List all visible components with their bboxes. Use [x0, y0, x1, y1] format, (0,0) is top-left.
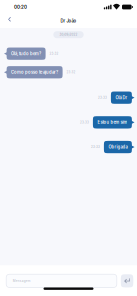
staticText: Obrigada: [108, 144, 127, 149]
button[interactable]: Mensagem: [6, 274, 117, 287]
staticText: 23:32: [67, 70, 76, 74]
staticText: 23:33: [98, 96, 107, 99]
staticText: Estou bem sim: [97, 120, 127, 125]
staticText: Olá, tudo bem?: [11, 51, 41, 56]
staticText: 23:33: [80, 121, 89, 124]
button[interactable]: Back: [0, 14, 18, 28]
staticText: Como posso te ajudar?: [11, 70, 58, 75]
staticText: Mensagem: [13, 279, 31, 283]
staticText: 23:33: [91, 145, 100, 149]
staticText: 30/09/2022: [59, 33, 77, 36]
staticText: 00:20: [14, 4, 27, 10]
button[interactable]: Send: [121, 274, 133, 287]
staticText: Olá Dr: [115, 95, 127, 100]
staticText: 23:32: [50, 52, 59, 55]
staticText: Dr João: [60, 18, 76, 24]
